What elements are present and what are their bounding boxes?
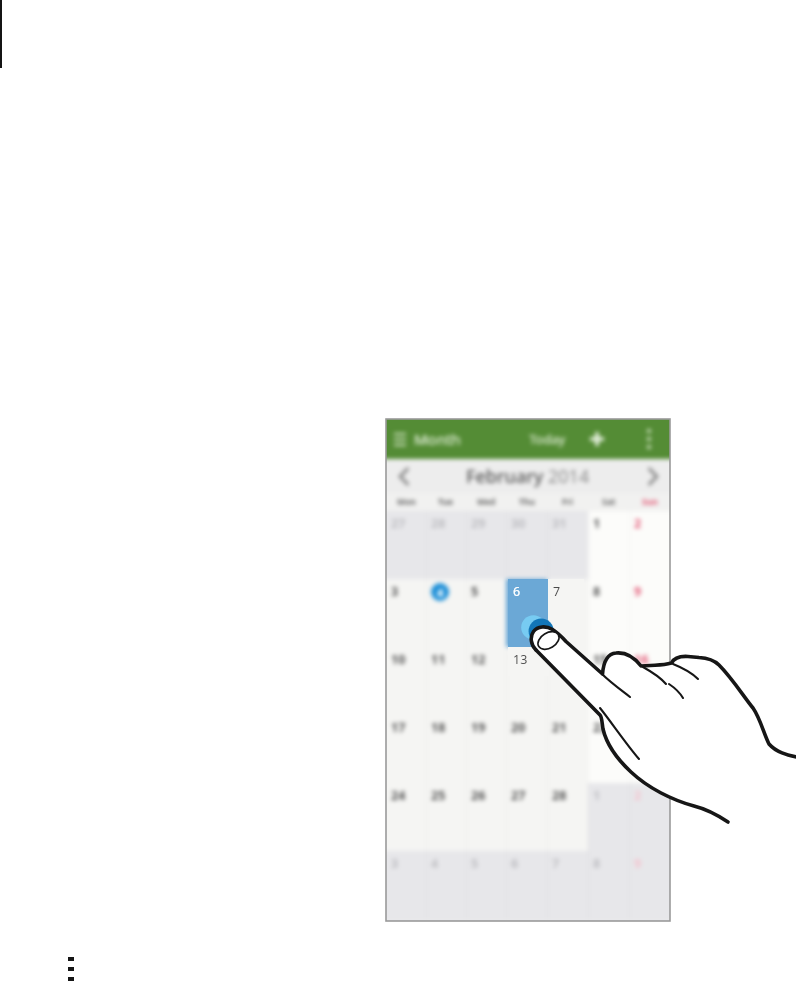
staticText: 15 [593, 651, 608, 668]
staticText: 29 [471, 515, 486, 532]
button[interactable]: 21 [547, 715, 588, 783]
staticText: 2014 [548, 464, 590, 489]
staticText: 3 [391, 583, 399, 600]
button[interactable]: 3 [386, 579, 426, 647]
staticText: 2 [634, 787, 642, 804]
button[interactable]: 30 [506, 511, 547, 579]
staticText: 22 [593, 719, 608, 736]
staticText: 27 [391, 515, 406, 532]
staticText: 6 [511, 855, 519, 872]
staticText: 2 [634, 515, 642, 532]
button[interactable]: 12 [466, 647, 506, 715]
staticText: 28 [431, 515, 446, 532]
staticText: 8 [593, 583, 601, 600]
staticText: 13 [511, 651, 526, 668]
button[interactable]: 6 [506, 579, 547, 647]
staticText: 17 [391, 719, 406, 736]
staticText: 7 [552, 583, 560, 600]
staticText: 4 [431, 855, 439, 872]
staticText: Mon [397, 496, 416, 508]
button[interactable]: 29 [466, 511, 506, 579]
staticText: 24 [391, 787, 406, 804]
button[interactable]: 22 [588, 715, 629, 783]
button[interactable]: 4 [426, 579, 466, 647]
staticText: 6 [513, 583, 521, 600]
button[interactable]: 7 [547, 579, 588, 647]
staticText: 1 [593, 787, 601, 804]
staticText: 30 [511, 515, 526, 532]
button[interactable]: Add event [566, 419, 628, 459]
button[interactable]: 23 [629, 715, 670, 783]
button[interactable]: 11 [426, 647, 466, 715]
staticText: Sun [642, 496, 658, 508]
button[interactable]: 1 [588, 511, 629, 579]
staticText: 7 [553, 583, 561, 600]
button[interactable]: 20 [506, 715, 547, 783]
staticText: 4 [437, 585, 444, 600]
staticText: 7 [552, 855, 560, 872]
staticText: Thu [519, 496, 535, 508]
button[interactable]: 13 [506, 647, 547, 715]
staticText: Sat [602, 496, 616, 508]
button[interactable]: 27 [386, 511, 426, 579]
staticText: Tue [438, 496, 454, 508]
button[interactable]: 27 [506, 783, 547, 851]
button[interactable]: 2 [629, 511, 670, 579]
button[interactable]: Menu [386, 419, 414, 459]
button[interactable]: 10 [386, 647, 426, 715]
staticText: 3 [391, 855, 399, 872]
button[interactable]: 3 [386, 851, 426, 919]
button[interactable]: Today [529, 419, 566, 459]
staticText: 13 [513, 651, 528, 668]
button[interactable]: 2 [629, 783, 670, 851]
button[interactable]: 9 [629, 851, 670, 919]
button[interactable]: 26 [466, 783, 506, 851]
button[interactable]: 17 [386, 715, 426, 783]
button[interactable]: 15 [588, 647, 629, 715]
staticText: 14 [552, 651, 567, 668]
staticText: 25 [431, 787, 446, 804]
staticText: Wed [477, 496, 496, 508]
staticText: Month [414, 429, 461, 449]
button[interactable]: 19 [466, 715, 506, 783]
staticText: 11 [431, 651, 446, 668]
staticText: 6 [511, 583, 519, 600]
button[interactable]: 31 [547, 511, 588, 579]
button[interactable]: 25 [426, 783, 466, 851]
staticText: 16 [634, 651, 649, 668]
staticText: 5 [471, 583, 479, 600]
button[interactable]: Next month [636, 459, 670, 493]
staticText: February [466, 464, 548, 489]
staticText: 18 [431, 719, 446, 736]
button[interactable]: 24 [386, 783, 426, 851]
button[interactable]: 28 [547, 783, 588, 851]
staticText: Fri [562, 496, 574, 508]
staticText: 26 [471, 787, 486, 804]
staticText: 5 [471, 855, 479, 872]
staticText: 12 [471, 651, 486, 668]
button[interactable]: More [68, 957, 74, 981]
button[interactable]: More options [628, 419, 670, 459]
button[interactable]: 8 [588, 579, 629, 647]
button[interactable]: 16 [629, 647, 670, 715]
staticText: 1 [593, 515, 601, 532]
staticText: 27 [511, 787, 526, 804]
staticText: 31 [552, 515, 567, 532]
button[interactable]: 18 [426, 715, 466, 783]
button[interactable]: 9 [629, 579, 670, 647]
staticText: 8 [593, 855, 601, 872]
staticText: 10 [391, 651, 406, 668]
staticText: Today [529, 430, 566, 448]
button[interactable]: 5 [466, 579, 506, 647]
button[interactable]: Previous month [386, 459, 420, 493]
button[interactable]: 14 [547, 647, 588, 715]
staticText: 9 [634, 855, 642, 872]
button[interactable]: 28 [426, 511, 466, 579]
